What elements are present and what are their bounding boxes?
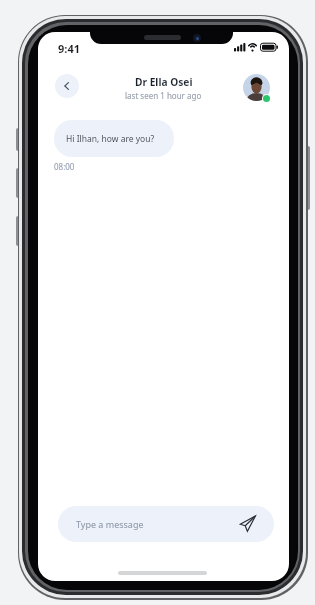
staticText: 08:00 [54, 161, 75, 172]
staticText: Hi Ilhan, how are you? [66, 133, 155, 145]
staticText: last seen 1 hour ago [125, 90, 202, 101]
button[interactable] [239, 515, 257, 533]
staticText: Dr Ella Osei [135, 75, 193, 89]
staticText: Type a message [76, 518, 144, 530]
staticText: 9:41 [58, 41, 80, 56]
button[interactable]: Type a message [58, 506, 274, 542]
button[interactable] [243, 74, 270, 101]
button[interactable]: Hi Ilhan, how are you? [54, 120, 174, 157]
button[interactable] [55, 74, 79, 98]
